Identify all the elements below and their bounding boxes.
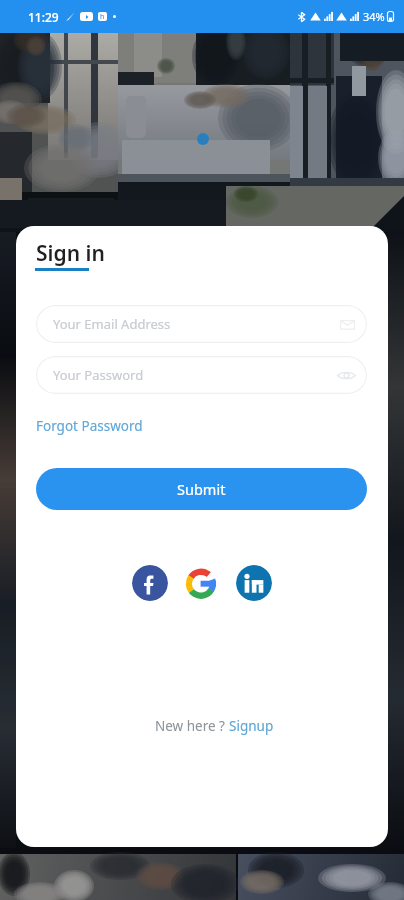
staticText: Forgot Password <box>36 417 143 435</box>
button[interactable]: Sign in with Facebook <box>132 565 168 601</box>
button[interactable]: Signup <box>229 717 274 735</box>
staticText: New here ? <box>155 717 229 735</box>
button[interactable]: Your Email Address <box>36 305 367 343</box>
staticText: Your Password <box>53 366 144 384</box>
button[interactable]: Sign in with LinkedIn <box>236 565 272 601</box>
staticText: 11:29 <box>28 9 59 25</box>
staticText: Your Email Address <box>53 315 171 333</box>
staticText: h <box>100 12 105 21</box>
staticText: Submit <box>177 479 226 499</box>
button[interactable]: Your Password <box>36 356 367 394</box>
button[interactable]: Submit <box>36 468 367 510</box>
staticText: 34% <box>363 9 385 24</box>
button[interactable]: Sign in with Google <box>184 565 220 601</box>
button[interactable]: Forgot Password <box>36 417 143 435</box>
staticText: Sign in <box>36 239 105 268</box>
staticText: Signup <box>229 717 274 735</box>
